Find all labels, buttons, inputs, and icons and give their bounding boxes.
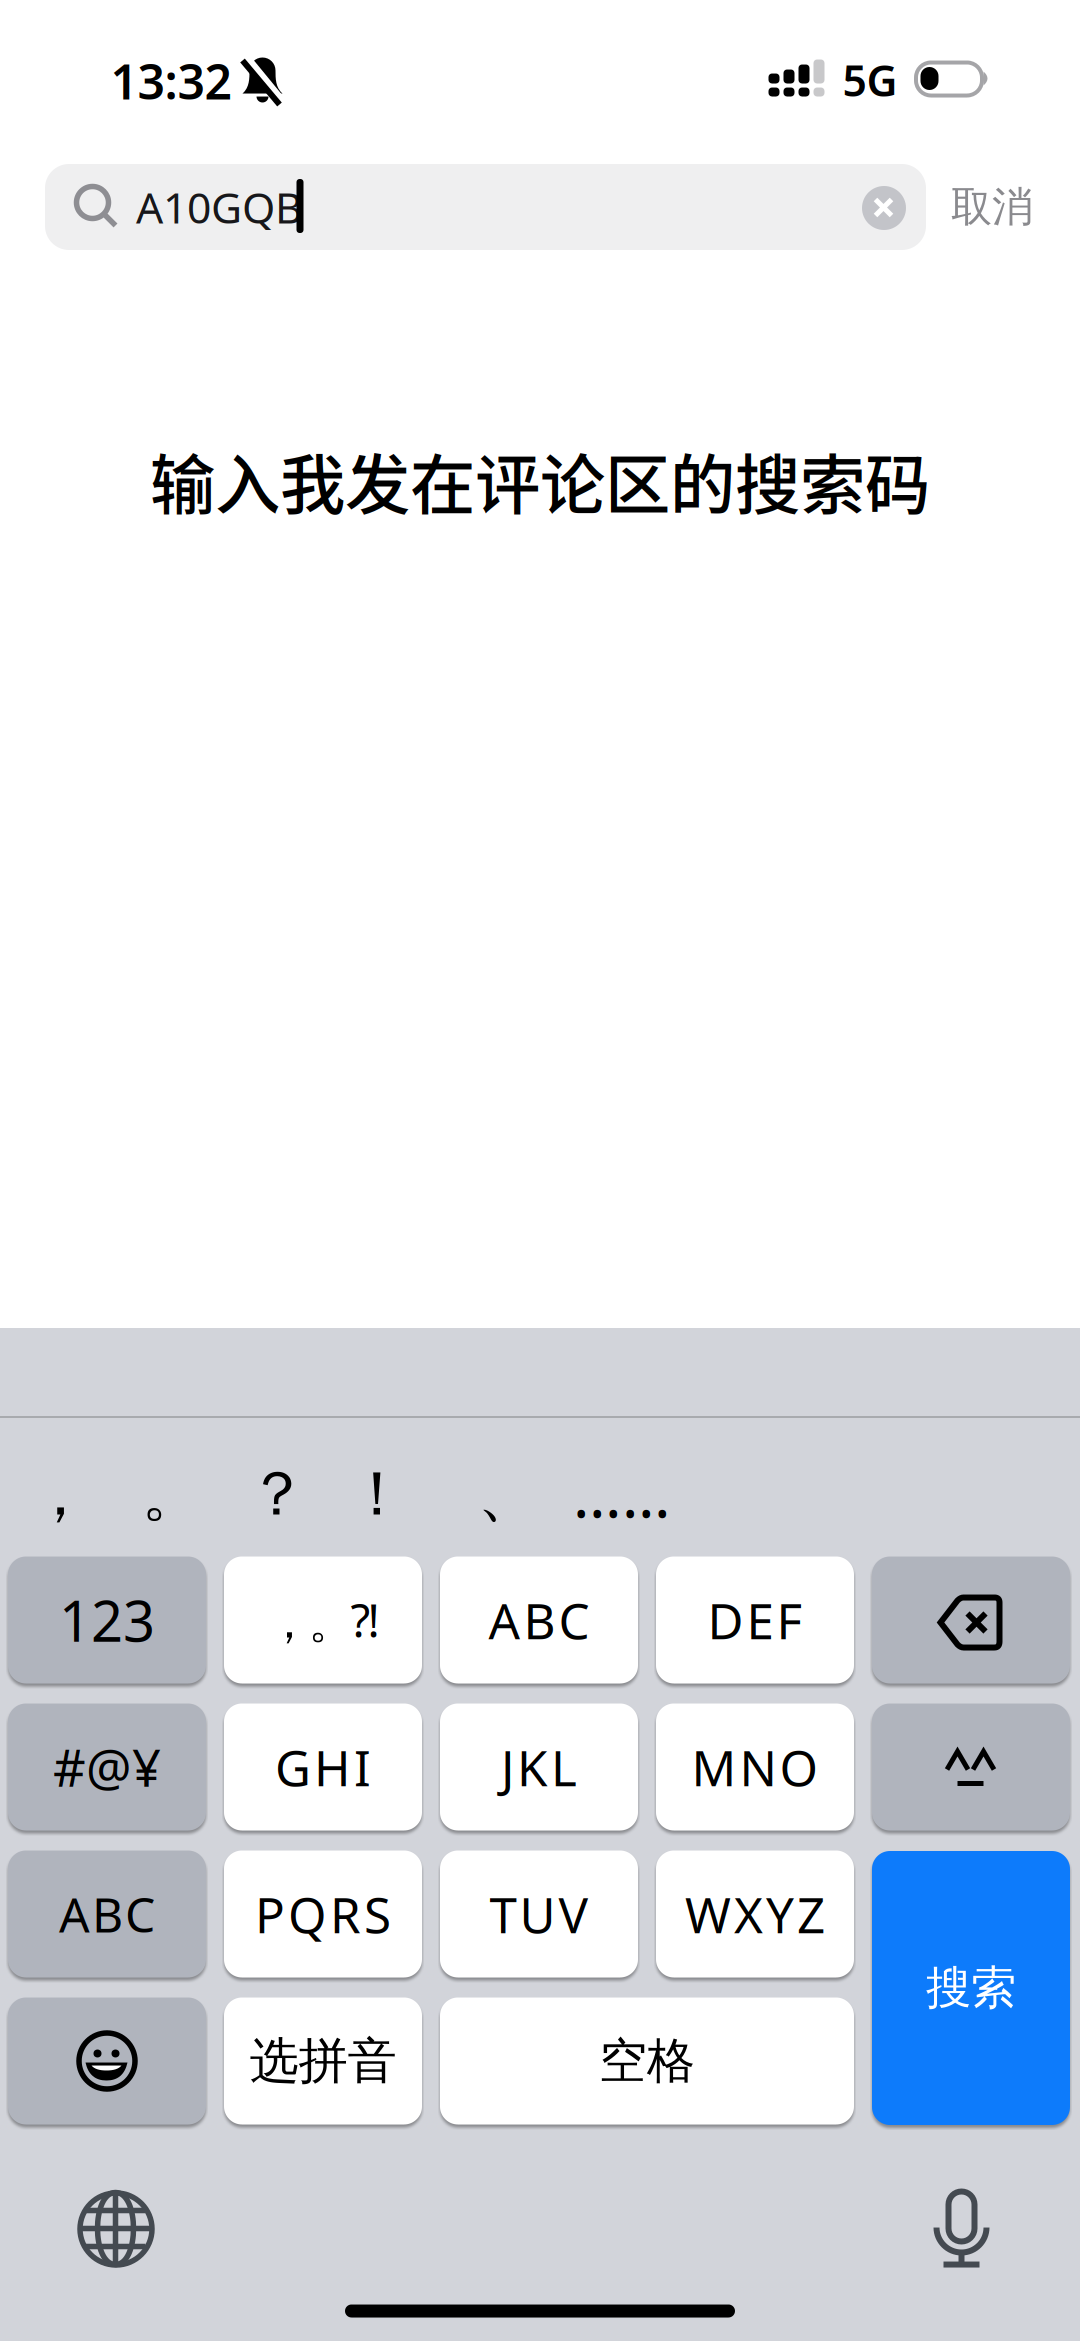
button[interactable]: 下一个键盘: [71, 2184, 161, 2274]
button[interactable]: Search field A10GQB: [45, 164, 926, 250]
button[interactable]: TUV: [440, 1850, 638, 1977]
staticText: 取消: [951, 182, 1033, 232]
staticText: TUV: [489, 1881, 588, 1947]
button[interactable]: ……: [573, 1453, 671, 1535]
staticText: 选拼音: [249, 2031, 396, 2091]
button[interactable]: 听写: [927, 2183, 997, 2293]
staticText: 、: [477, 1456, 538, 1532]
staticText: 13:32: [110, 49, 231, 113]
button[interactable]: ，。?!: [224, 1556, 422, 1683]
staticText: ，: [29, 1456, 90, 1532]
button[interactable]: 表情: [8, 1997, 206, 2124]
button[interactable]: 选拼音: [224, 1997, 422, 2124]
staticText: JKL: [501, 1734, 577, 1800]
button[interactable]: ABC: [440, 1556, 638, 1683]
staticText: 输入我发在评论区的搜索码: [150, 433, 930, 527]
button[interactable]: 空格: [440, 1997, 854, 2124]
staticText: A10GQB: [136, 179, 303, 235]
button[interactable]: ？: [246, 1456, 307, 1532]
button[interactable]: 123: [8, 1556, 206, 1683]
staticText: 空格: [599, 2031, 695, 2090]
button[interactable]: WXYZ: [656, 1850, 854, 1977]
button[interactable]: ！: [346, 1456, 407, 1532]
button[interactable]: GHI: [224, 1703, 422, 1830]
staticText: ！: [346, 1456, 407, 1532]
staticText: ？: [246, 1456, 307, 1532]
button[interactable]: ABC: [8, 1850, 206, 1977]
button[interactable]: PQRS: [224, 1850, 422, 1977]
staticText: 5G: [842, 52, 897, 108]
button[interactable]: 。: [141, 1456, 202, 1532]
staticText: WXYZ: [685, 1881, 825, 1947]
button[interactable]: #@¥: [8, 1703, 206, 1830]
staticText: DEF: [707, 1587, 802, 1653]
staticText: ，。?!: [266, 1590, 379, 1650]
staticText: ABC: [59, 1882, 155, 1946]
button[interactable]: 取消: [951, 182, 1033, 232]
button[interactable]: 搜索: [872, 1851, 1070, 2125]
staticText: GHI: [275, 1734, 371, 1800]
button[interactable]: ，: [29, 1456, 90, 1532]
staticText: ABC: [488, 1587, 589, 1653]
staticText: PQRS: [255, 1881, 391, 1947]
staticText: 123: [59, 1583, 155, 1657]
button[interactable]: 分词: [872, 1703, 1070, 1830]
button[interactable]: 删除: [872, 1556, 1070, 1683]
button[interactable]: MNO: [656, 1703, 854, 1830]
button[interactable]: 、: [477, 1456, 538, 1532]
staticText: 。: [141, 1456, 202, 1532]
button[interactable]: JKL: [440, 1703, 638, 1830]
staticText: 搜索: [926, 1960, 1016, 2016]
button[interactable]: Clear text: [862, 186, 906, 230]
staticText: MNO: [691, 1734, 818, 1800]
staticText: ……: [573, 1453, 671, 1535]
staticText: #@¥: [53, 1733, 161, 1801]
button[interactable]: DEF: [656, 1556, 854, 1683]
